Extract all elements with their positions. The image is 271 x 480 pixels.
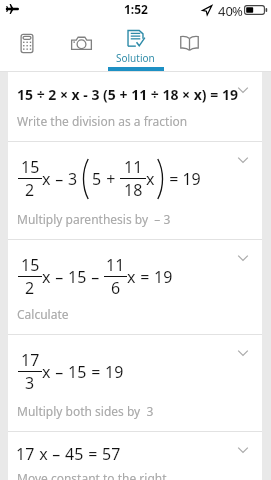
staticText: = (84, 443, 102, 465)
staticText: 3 (25, 372, 35, 394)
button[interactable]: 15 (8, 142, 262, 240)
staticText: 1:52 (124, 1, 148, 17)
button[interactable]: Expand step (228, 338, 258, 368)
staticText: 2 (25, 179, 35, 201)
staticText: x (35, 443, 48, 465)
staticText: 5 (92, 168, 102, 190)
staticText: 17 (16, 443, 35, 465)
button[interactable]: Book (162, 22, 216, 72)
staticText: Multiply both sides by 3 (17, 403, 154, 419)
staticText: 18 (124, 179, 143, 201)
staticText: 15 (21, 156, 40, 178)
staticText: – (51, 266, 68, 288)
staticText: 15 (68, 266, 87, 288)
staticText: 57 (102, 443, 121, 465)
button[interactable]: 17 (8, 432, 262, 480)
staticText: x (146, 168, 155, 190)
staticText: % (232, 2, 243, 20)
staticText: x (42, 361, 51, 383)
staticText: – (51, 168, 68, 190)
button[interactable]: Expand step (228, 145, 258, 175)
staticText: – (51, 361, 68, 383)
button[interactable]: Solution (108, 22, 162, 72)
staticText: x (127, 266, 136, 288)
button[interactable]: Expand step (228, 435, 258, 465)
staticText: 6 (111, 277, 121, 299)
staticText: + (102, 168, 120, 190)
staticText: 3 (68, 168, 78, 190)
staticText: x (42, 168, 51, 190)
staticText: = (136, 266, 154, 288)
staticText: Multiply parenthesis by – 3 (17, 211, 171, 227)
staticText: Calculate (17, 306, 69, 322)
button[interactable]: 15 ÷ 2 × x - 3 (5 + 11 ÷ 18 × x) = 19 (8, 72, 262, 142)
other: Airplane mode (6, 4, 18, 14)
staticText: = (87, 361, 105, 383)
staticText: – (48, 443, 65, 465)
staticText: Write the division as a fraction (17, 113, 188, 129)
button[interactable]: Calculator (0, 22, 54, 72)
staticText: 19 (154, 266, 173, 288)
staticText: Solution (116, 51, 155, 65)
staticText: 11 (106, 254, 125, 276)
button[interactable]: Expand step (228, 243, 258, 273)
button[interactable]: 15 (8, 240, 262, 335)
button[interactable]: 17 (8, 335, 262, 432)
staticText: Move constant to the right (17, 470, 167, 480)
staticText: 2 (25, 277, 35, 299)
staticText: 17 (21, 349, 40, 371)
other: Location (202, 5, 212, 15)
staticText: – (87, 266, 104, 288)
staticText: x (42, 266, 51, 288)
button[interactable]: Expand step (228, 75, 258, 105)
staticText: 15 (68, 361, 87, 383)
staticText: 45 (65, 443, 84, 465)
staticText: = 19 (165, 168, 201, 190)
button[interactable]: Camera (54, 22, 108, 72)
staticText: 15 ÷ 2 × x - 3 (5 + 11 ÷ 18 × x) = 19 (17, 85, 238, 104)
staticText: 11 (124, 156, 143, 178)
staticText: 19 (105, 361, 124, 383)
staticText: 40 (218, 2, 233, 20)
staticText: 15 (21, 254, 40, 276)
